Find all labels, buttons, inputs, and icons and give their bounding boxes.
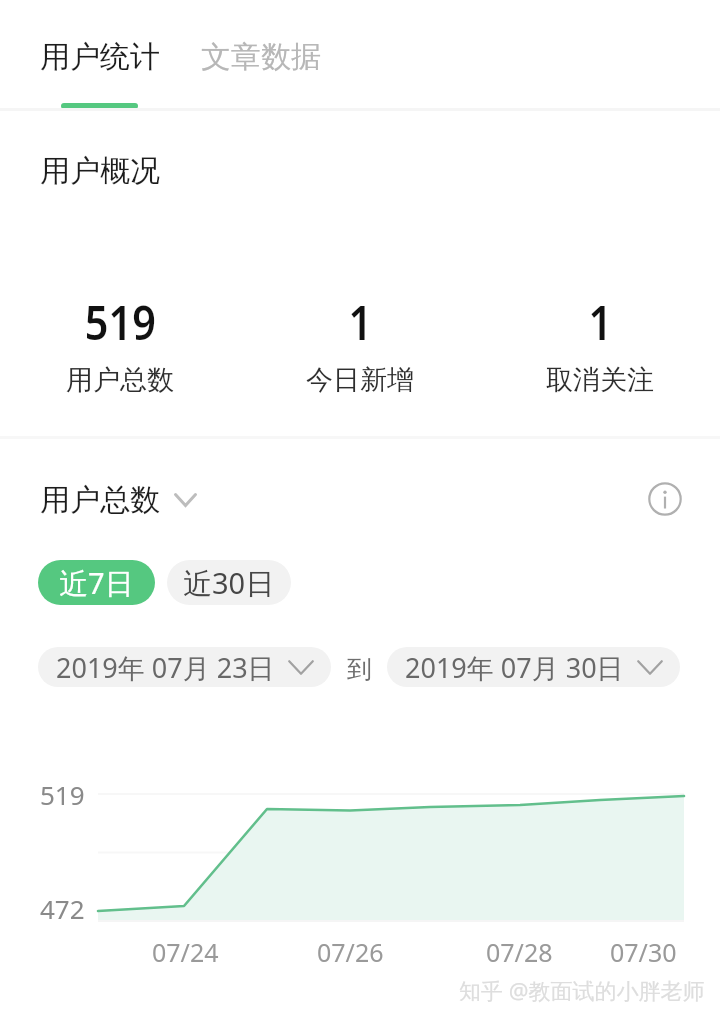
staticText: 07/26 (317, 935, 384, 969)
button[interactable]: 519 (0, 290, 240, 397)
button[interactable]: 用户总数 (40, 481, 197, 519)
button[interactable]: 文章数据 (181, 0, 341, 108)
staticText: 1 (349, 290, 372, 354)
staticText: 2019年 07月 30日 (405, 649, 624, 686)
staticText: 取消关注 (546, 363, 654, 397)
staticText: 07/28 (486, 935, 553, 969)
staticText: 1 (589, 290, 612, 354)
button[interactable]: 近7日 (38, 560, 155, 605)
button[interactable]: 1 (240, 290, 480, 397)
staticText: 用户概况 (40, 152, 160, 190)
button[interactable]: Info (648, 482, 682, 516)
button[interactable]: 2019年 07月 30日 (387, 647, 680, 687)
staticText: 07/24 (152, 935, 219, 969)
staticText: 519 (40, 777, 85, 812)
staticText: 知乎 @教面试的小胖老师 (459, 975, 705, 1005)
staticText: 到 (347, 654, 372, 685)
staticText: 2019年 07月 23日 (56, 649, 275, 686)
staticText: 用户总数 (66, 363, 174, 397)
button[interactable]: 近30日 (167, 560, 291, 605)
staticText: 近30日 (183, 563, 275, 603)
staticText: 用户总数 (40, 481, 160, 519)
staticText: 472 (40, 891, 85, 926)
staticText: 文章数据 (201, 38, 321, 76)
staticText: 07/30 (610, 935, 677, 969)
staticText: 用户统计 (40, 38, 160, 76)
button[interactable]: 2019年 07月 23日 (38, 647, 331, 687)
staticText: 近7日 (59, 563, 134, 603)
button[interactable]: 用户统计 (20, 0, 180, 108)
staticText: 今日新增 (306, 363, 414, 397)
staticText: 519 (85, 290, 156, 354)
button[interactable]: 1 (480, 290, 720, 397)
